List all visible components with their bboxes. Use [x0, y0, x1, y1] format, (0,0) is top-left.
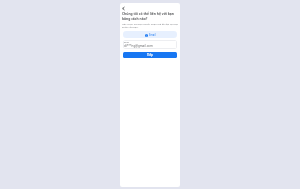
staticText: Email [124, 41, 130, 44]
staticText: Tiếp [147, 53, 153, 57]
button[interactable]: Email [123, 40, 177, 49]
staticText: di***ng@gmail.com [124, 44, 153, 48]
staticText: Chúng tôi có thể liên hệ với bạn bằng cá… [122, 11, 174, 21]
staticText: Hãy chọn nơi bạn muốn nhận mã để đặt lại… [122, 22, 178, 28]
button[interactable]: Tiếp [123, 52, 177, 58]
staticText: Email [149, 33, 156, 37]
button[interactable]: Back [122, 6, 127, 11]
button[interactable]: Email [123, 31, 177, 38]
